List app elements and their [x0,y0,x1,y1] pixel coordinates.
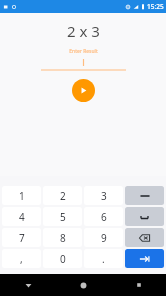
staticText: 15:25 [147,2,164,11]
button[interactable]: 1 [2,186,41,205]
button[interactable]: 5 [43,207,82,226]
staticText: 9 [101,231,107,245]
button[interactable]: 9 [84,228,123,247]
button[interactable]: Backspace [125,228,164,247]
staticText: 0 [60,252,66,266]
button[interactable]: Play [72,79,95,102]
button[interactable]: . [84,249,123,268]
button[interactable]: Recents [111,274,166,296]
button[interactable]: , [2,249,41,268]
staticText: 4 [19,210,25,224]
staticText: 7 [19,231,25,245]
staticText: 6 [101,210,107,224]
staticText: 5 [60,210,66,224]
button[interactable]: Next [125,249,164,268]
button[interactable]: 2 [43,186,82,205]
button[interactable]: Minus [125,186,164,205]
staticText: 3 [101,189,107,203]
staticText: Enter Result [69,48,98,55]
button[interactable]: 8 [43,228,82,247]
button[interactable]: 4 [2,207,41,226]
staticText: 1 [19,189,25,203]
staticText: 8 [60,231,66,245]
button[interactable]: 3 [84,186,123,205]
button[interactable]: 0 [43,249,82,268]
button[interactable]: 7 [2,228,41,247]
staticText: 2 x 3 [67,21,100,41]
staticText: , [20,252,23,266]
staticText: 2 [60,189,66,203]
button[interactable]: 6 [84,207,123,226]
staticText: . [102,252,105,266]
button[interactable]: Back [0,274,56,296]
button[interactable]: Home [56,274,111,296]
button[interactable]: Space [125,207,164,226]
